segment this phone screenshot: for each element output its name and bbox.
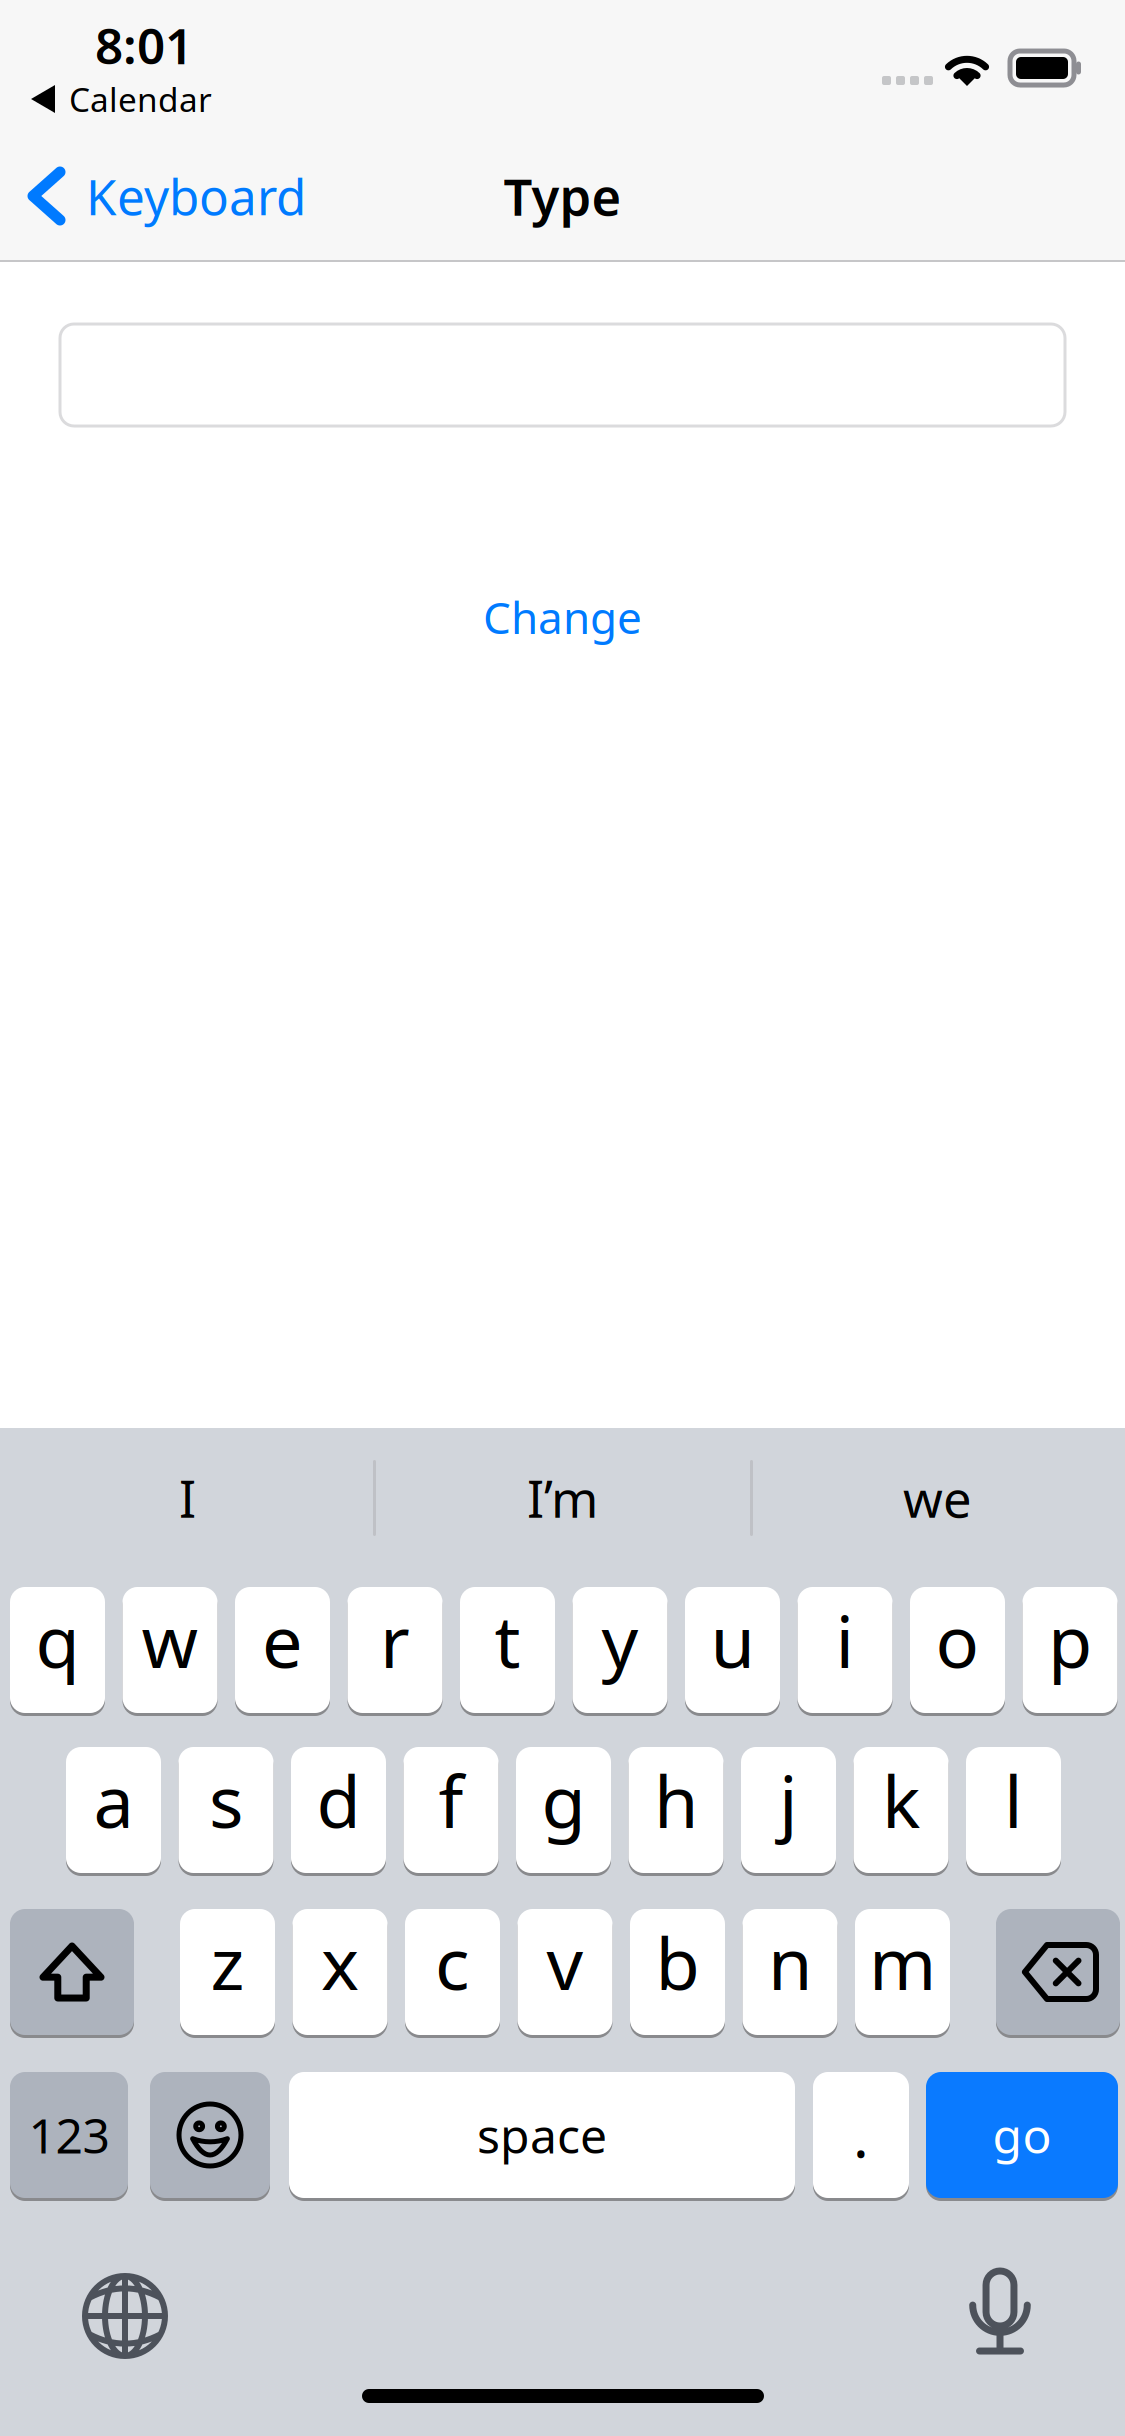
- staticText: b: [655, 1914, 699, 2010]
- staticText: I: [179, 1464, 196, 1532]
- button[interactable]: Dictation: [945, 2247, 1055, 2379]
- button[interactable]: Emoji: [150, 2072, 270, 2198]
- staticText: p: [1048, 1592, 1092, 1688]
- button[interactable]: I’m: [375, 1428, 750, 1568]
- button[interactable]: c: [405, 1909, 500, 2035]
- button[interactable]: z: [180, 1909, 275, 2035]
- staticText: w: [141, 1592, 198, 1688]
- staticText: 8:01: [95, 12, 193, 78]
- button[interactable]: n: [742, 1909, 837, 2035]
- button[interactable]: b: [630, 1909, 725, 2035]
- staticText: i: [835, 1592, 854, 1688]
- button[interactable]: m: [855, 1909, 950, 2035]
- button[interactable]: p: [1022, 1587, 1117, 1713]
- staticText: Calendar: [69, 77, 212, 121]
- button[interactable]: I: [0, 1428, 375, 1568]
- button[interactable]: r: [347, 1587, 442, 1713]
- button[interactable]: g: [516, 1747, 611, 1873]
- staticText: Keyboard: [86, 163, 306, 229]
- staticText: v: [546, 1914, 583, 2010]
- staticText: space: [477, 2103, 607, 2167]
- button[interactable]: k: [853, 1747, 948, 1873]
- button[interactable]: q: [10, 1587, 105, 1713]
- button[interactable]: d: [291, 1747, 386, 1873]
- button[interactable]: j: [741, 1747, 836, 1873]
- button[interactable]: a: [66, 1747, 161, 1873]
- button[interactable]: Shift: [10, 1909, 134, 2035]
- button[interactable]: Delete: [996, 1909, 1120, 2035]
- button[interactable]: Change: [0, 577, 1125, 657]
- staticText: 123: [28, 2103, 109, 2167]
- staticText: s: [209, 1752, 243, 1848]
- button[interactable]: e: [235, 1587, 330, 1713]
- button[interactable]: f: [403, 1747, 498, 1873]
- button[interactable]: .: [813, 2072, 909, 2198]
- staticText: .: [853, 2096, 869, 2174]
- staticText: r: [380, 1592, 410, 1688]
- button[interactable]: v: [517, 1909, 612, 2035]
- staticText: a: [93, 1752, 133, 1848]
- staticText: z: [210, 1914, 244, 2010]
- button[interactable]: Next keyboard: [67, 2258, 183, 2374]
- button[interactable]: s: [178, 1747, 273, 1873]
- button[interactable]: x: [292, 1909, 387, 2035]
- button[interactable]: go: [926, 2072, 1118, 2198]
- staticText: t: [494, 1592, 520, 1688]
- button[interactable]: l: [966, 1747, 1061, 1873]
- staticText: I’m: [527, 1464, 598, 1532]
- button[interactable]: we: [750, 1428, 1125, 1568]
- staticText: k: [882, 1752, 920, 1848]
- button[interactable]: Keyboard: [0, 143, 306, 249]
- staticText: y: [601, 1592, 638, 1688]
- staticText: go: [992, 2103, 1051, 2167]
- staticText: e: [262, 1592, 303, 1688]
- staticText: Change: [483, 588, 642, 646]
- button[interactable]: w: [122, 1587, 217, 1713]
- staticText: l: [1004, 1752, 1023, 1848]
- staticText: n: [768, 1914, 812, 2010]
- staticText: we: [903, 1464, 972, 1532]
- staticText: g: [541, 1752, 585, 1848]
- staticText: f: [438, 1752, 463, 1848]
- staticText: x: [321, 1914, 359, 2010]
- staticText: d: [316, 1752, 360, 1848]
- button[interactable]: h: [628, 1747, 723, 1873]
- staticText: c: [435, 1914, 470, 2010]
- staticText: Type: [503, 162, 621, 230]
- staticText: m: [869, 1914, 936, 2010]
- button[interactable]: o: [910, 1587, 1005, 1713]
- button[interactable]: space: [289, 2072, 795, 2198]
- staticText: q: [35, 1592, 79, 1688]
- staticText: u: [710, 1592, 754, 1688]
- button[interactable]: 123: [10, 2072, 128, 2198]
- staticText: o: [935, 1592, 979, 1688]
- staticText: j: [779, 1752, 798, 1848]
- button[interactable]: u: [685, 1587, 780, 1713]
- staticText: h: [654, 1752, 698, 1848]
- button[interactable]: y: [572, 1587, 667, 1713]
- button[interactable]: i: [797, 1587, 892, 1713]
- button[interactable]: t: [460, 1587, 555, 1713]
